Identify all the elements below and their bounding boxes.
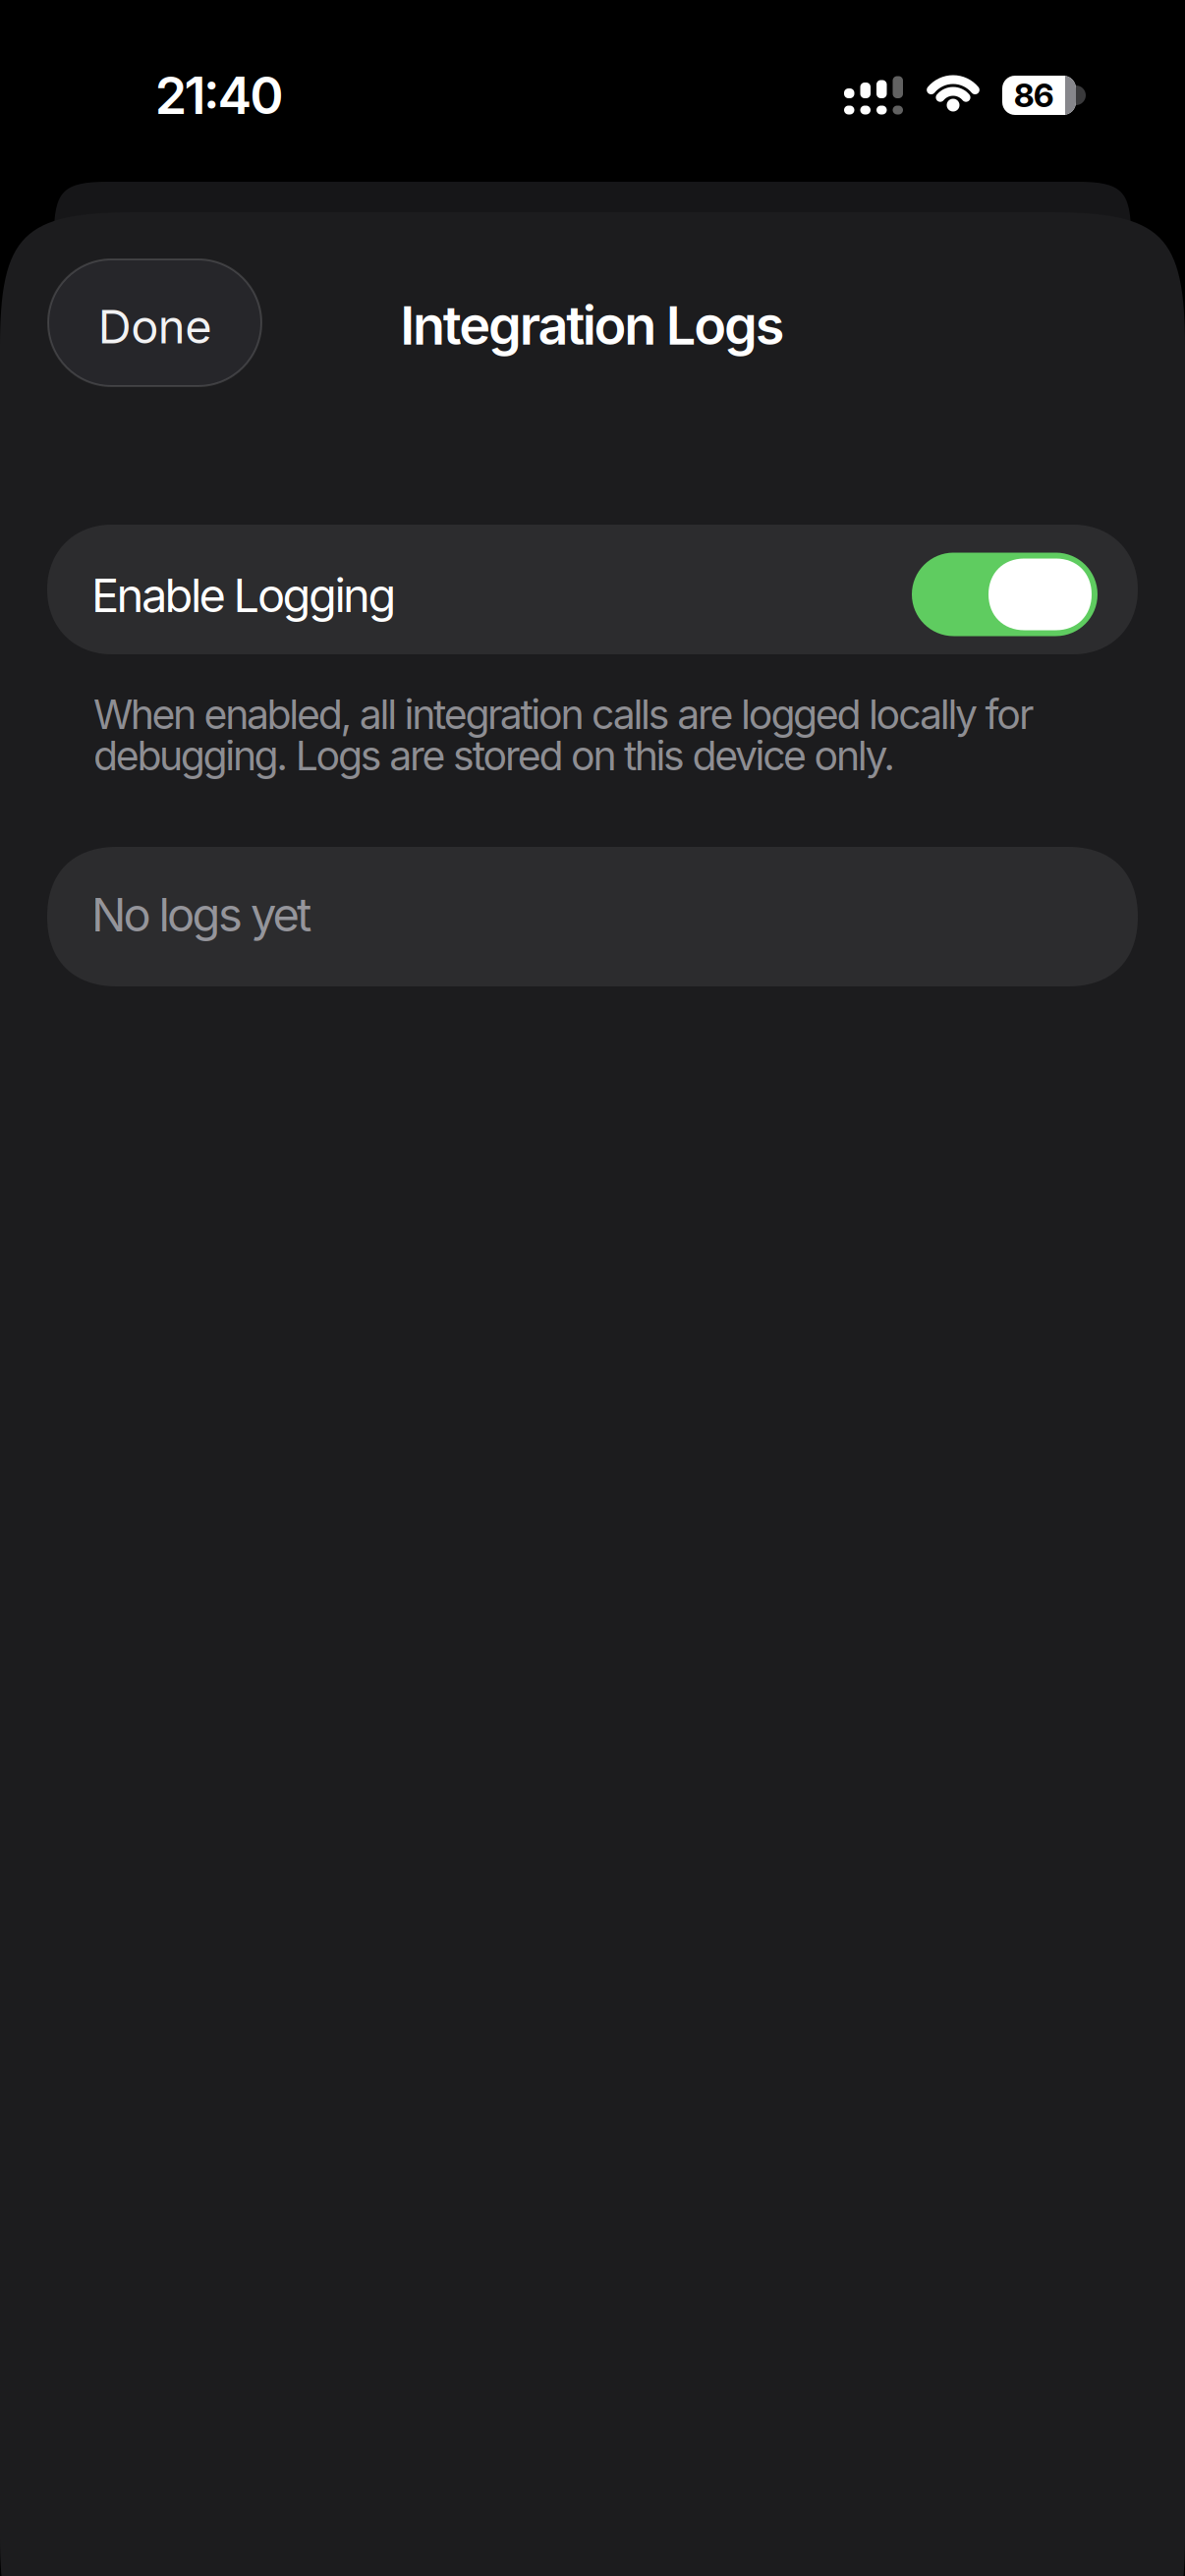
staticText: 86 — [1014, 76, 1054, 114]
button[interactable]: Enable Logging — [912, 553, 1098, 636]
staticText: No logs yet — [91, 887, 311, 942]
staticText: Integration Logs — [400, 294, 785, 356]
staticText: When enabled, all integration calls are … — [93, 690, 1034, 738]
staticText: 21:40 — [155, 65, 283, 125]
staticText: Done — [98, 299, 212, 354]
button[interactable]: Done — [48, 259, 261, 386]
staticText: debugging. Logs are stored on this devic… — [93, 732, 895, 779]
staticText: Enable Logging — [91, 568, 396, 623]
